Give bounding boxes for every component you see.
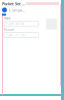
staticText: Pocket Set Ltd [5,22,24,25]
staticText: 1 Jan – 31 Dec [5,33,25,37]
staticText: Period [4,28,14,32]
staticText: Company [9,7,25,13]
staticText: Pocket Set Ltd [2,1,25,6]
staticText: Name [4,17,11,20]
